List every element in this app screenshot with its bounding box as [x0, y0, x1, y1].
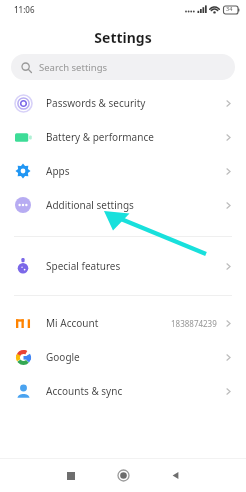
staticText: Mi Account — [46, 316, 99, 330]
button[interactable]: Google — [0, 340, 246, 374]
staticText: 11:06 — [14, 4, 35, 15]
button[interactable]: Apps — [0, 154, 246, 188]
button[interactable]: Recent apps — [45, 459, 97, 492]
staticText: Apps — [46, 164, 70, 178]
button[interactable]: Mi Account — [0, 306, 246, 340]
staticText: Google — [46, 350, 80, 364]
staticText: Search settings — [39, 61, 108, 74]
staticText: 34 — [226, 5, 233, 12]
staticText: Additional settings — [46, 198, 134, 212]
button[interactable]: Search settings — [11, 54, 235, 80]
staticText: 1838874239 — [171, 318, 217, 329]
button[interactable]: Additional settings — [0, 188, 246, 222]
staticText: Settings — [94, 28, 152, 47]
button[interactable]: Battery & performance — [0, 120, 246, 154]
button[interactable]: Special features — [0, 249, 246, 283]
button[interactable]: Home — [97, 459, 149, 492]
staticText: Special features — [46, 259, 121, 273]
staticText: Passwords & security — [46, 96, 146, 110]
staticText: Battery & performance — [46, 130, 154, 144]
button[interactable]: Accounts & sync — [0, 374, 246, 408]
button[interactable]: Back — [149, 459, 201, 492]
button[interactable]: Passwords & security — [0, 86, 246, 120]
staticText: Accounts & sync — [46, 384, 123, 398]
